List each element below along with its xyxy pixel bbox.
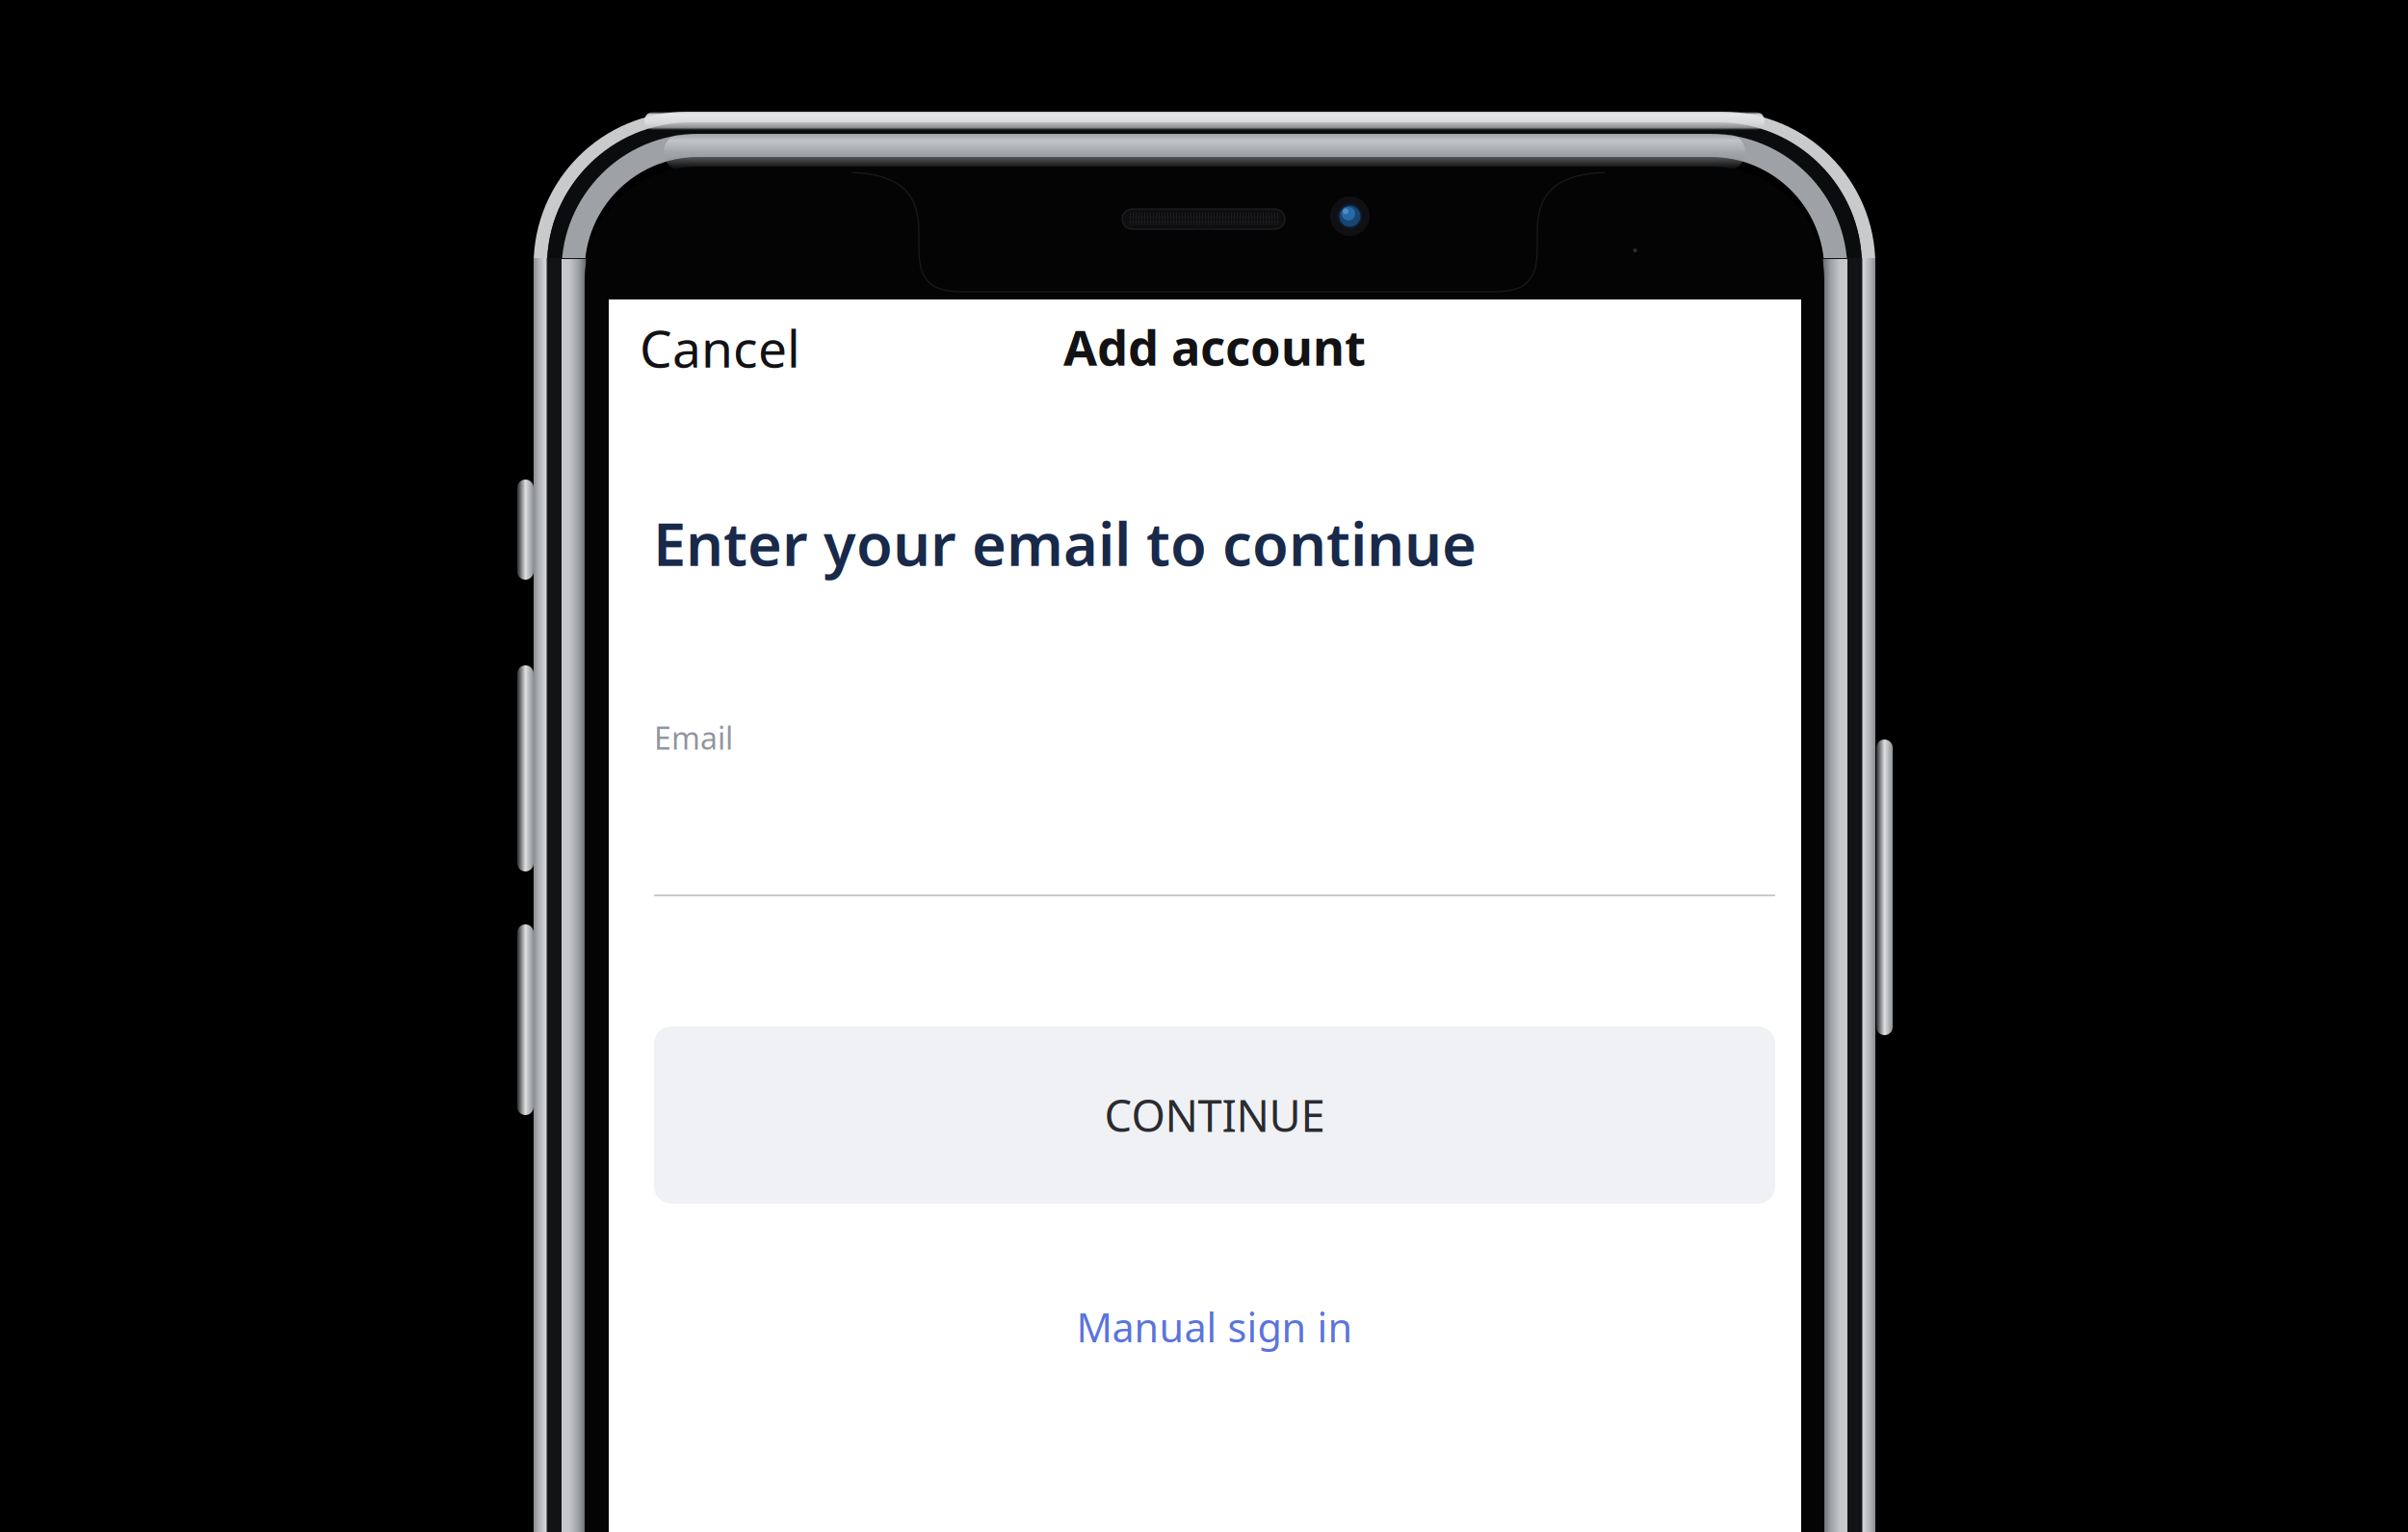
button[interactable]: Manual sign in xyxy=(654,1284,1775,1370)
staticText: CONTINUE xyxy=(1104,1086,1325,1144)
button[interactable]: Email xyxy=(654,715,1775,896)
button[interactable]: Cancel xyxy=(640,299,832,396)
staticText: Add account xyxy=(1063,314,1366,379)
button[interactable]: CONTINUE xyxy=(654,1026,1775,1204)
staticText: Manual sign in xyxy=(1076,1301,1353,1353)
staticText: Cancel xyxy=(640,314,800,382)
staticText: Email xyxy=(654,717,733,758)
staticText: Enter your email to continue xyxy=(653,504,1477,582)
button[interactable]: Add account xyxy=(974,299,1455,395)
